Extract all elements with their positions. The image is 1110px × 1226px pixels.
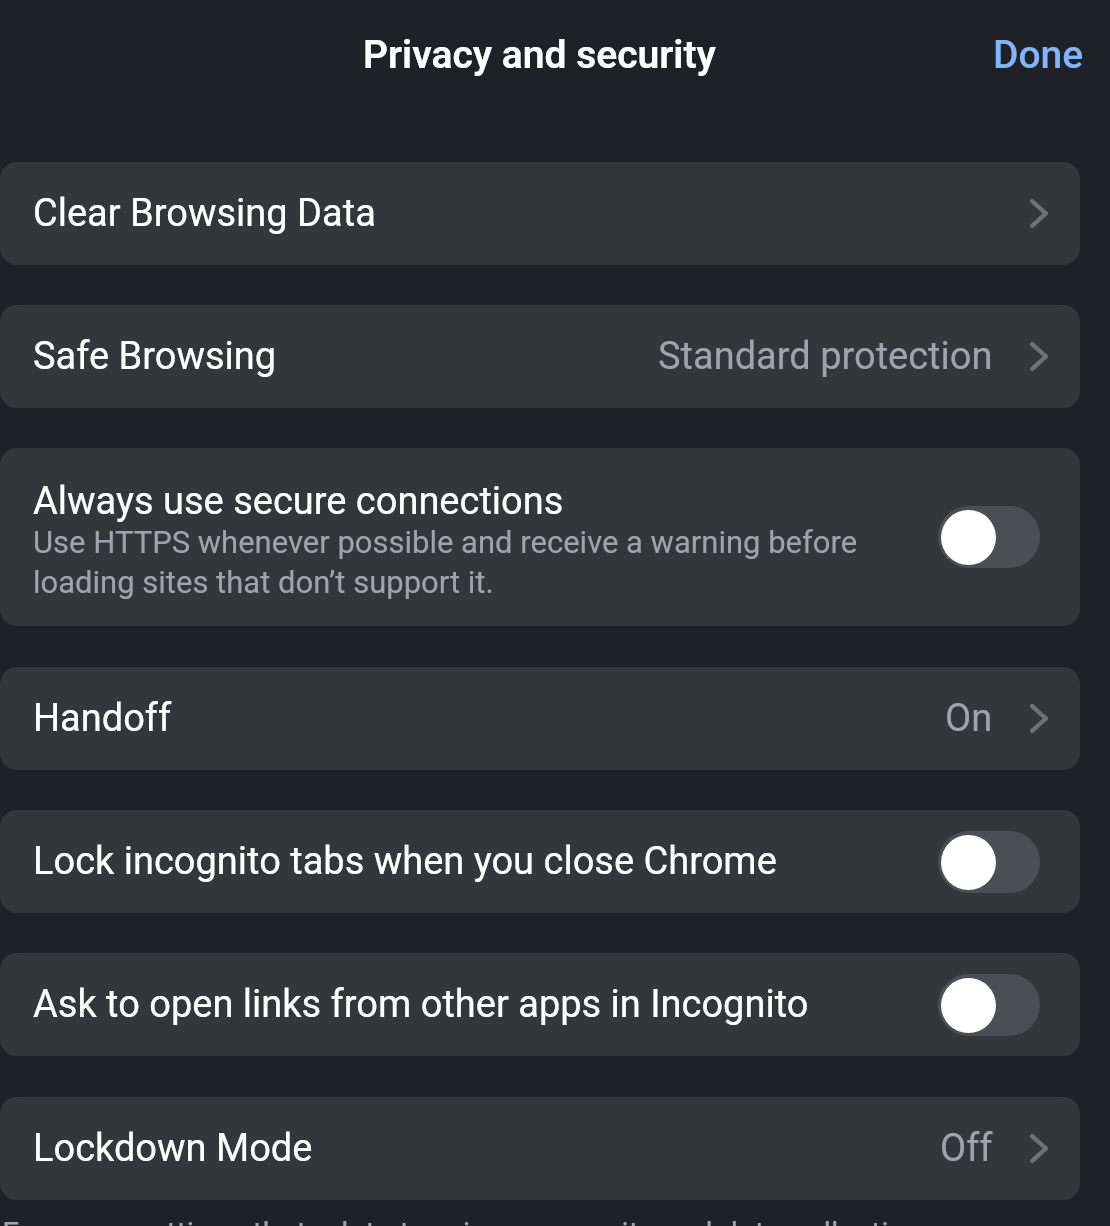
button[interactable]: Always use secure connections, off (938, 506, 1040, 568)
button[interactable]: Ask to open links from other apps in Inc… (938, 974, 1040, 1036)
staticText: Privacy and security (363, 32, 716, 78)
button[interactable]: Done (989, 22, 1088, 88)
button[interactable]: Ask to open links from other apps in Inc… (0, 953, 1080, 1056)
staticText: Handoff (33, 696, 172, 741)
staticText: On (945, 696, 993, 741)
button[interactable]: Lock incognito tabs when you close Chrom… (0, 810, 1080, 913)
button[interactable]: Safe Browsing (0, 305, 1080, 408)
staticText: Lockdown Mode (33, 1126, 313, 1171)
button[interactable]: Always use secure connections (0, 448, 1080, 626)
staticText: Ask to open links from other apps in Inc… (33, 982, 938, 1027)
button[interactable]: Clear Browsing Data (0, 162, 1080, 265)
staticText: Clear Browsing Data (33, 191, 376, 236)
staticText: Use HTTPS whenever possible and receive … (33, 524, 918, 600)
staticText: Always use secure connections (33, 479, 564, 524)
staticText: Done (993, 32, 1084, 78)
button[interactable]: Lock incognito tabs when you close Chrom… (938, 831, 1040, 893)
button[interactable]: Handoff (0, 667, 1080, 770)
staticText: Lock incognito tabs when you close Chrom… (33, 839, 938, 884)
staticText: Safe Browsing (33, 334, 277, 379)
staticText: For more settings that relate to privacy… (2, 1215, 924, 1226)
staticText: Standard protection (658, 334, 993, 379)
button[interactable]: Lockdown Mode (0, 1097, 1080, 1200)
staticText: Off (940, 1126, 993, 1171)
